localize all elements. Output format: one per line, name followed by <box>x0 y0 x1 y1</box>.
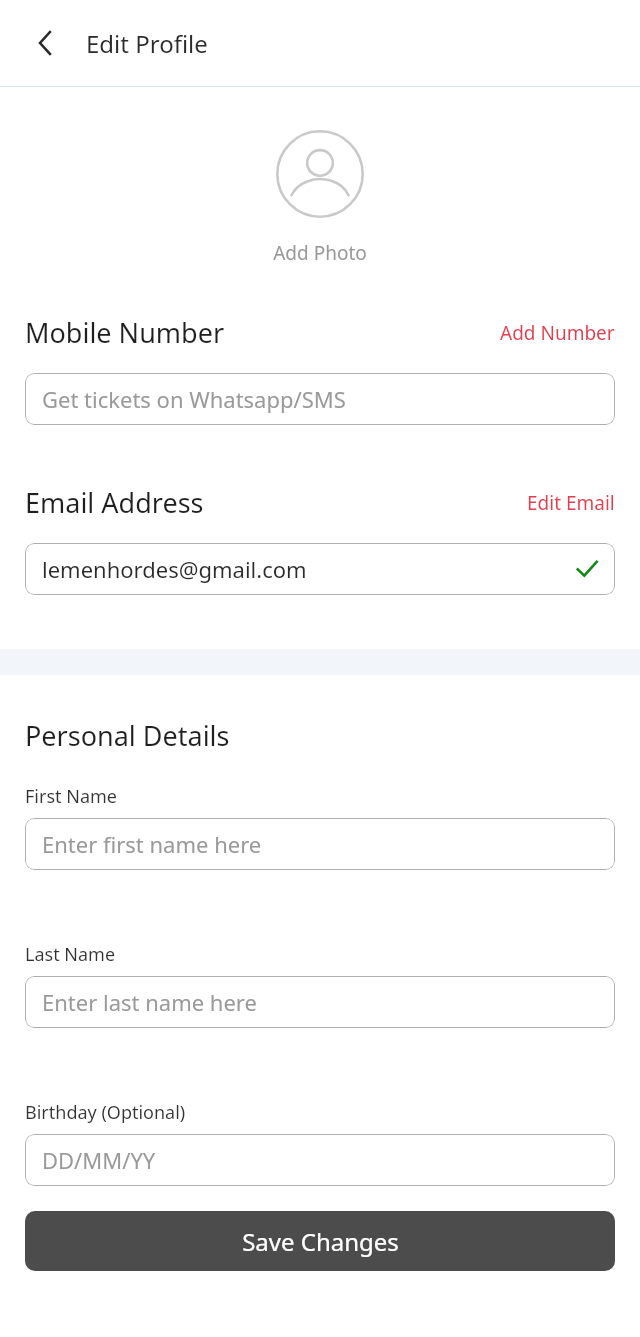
button[interactable]: Save Changes <box>25 1211 615 1271</box>
staticText: First Name <box>25 784 117 809</box>
staticText: Save Changes <box>242 1225 399 1258</box>
button[interactable]: lemenhordes@gmail.com <box>25 543 615 595</box>
button[interactable]: Add Number <box>500 320 615 346</box>
button[interactable]: Get tickets on Whatsapp/SMS <box>25 373 615 425</box>
staticText: Enter first name here <box>42 829 262 859</box>
staticText: Add Photo <box>273 240 367 266</box>
staticText: Add Number <box>500 320 615 346</box>
button[interactable]: Enter last name here <box>25 976 615 1028</box>
staticText: Edit Email <box>527 490 615 516</box>
button[interactable]: Back <box>22 20 68 66</box>
staticText: Enter last name here <box>42 987 257 1017</box>
button[interactable]: DD/MM/YY <box>25 1134 615 1186</box>
button[interactable]: Enter first name here <box>25 818 615 870</box>
button[interactable]: Edit Email <box>527 490 615 516</box>
button[interactable]: Add Photo <box>276 130 364 218</box>
staticText: lemenhordes@gmail.com <box>42 554 307 584</box>
staticText: DD/MM/YY <box>42 1145 156 1175</box>
staticText: Mobile Number <box>25 314 225 351</box>
staticText: Last Name <box>25 942 116 967</box>
staticText: Get tickets on Whatsapp/SMS <box>42 384 346 414</box>
staticText: Email Address <box>25 484 204 521</box>
staticText: Personal Details <box>25 717 230 754</box>
staticText: Birthday (Optional) <box>25 1100 186 1125</box>
staticText: Edit Profile <box>86 27 208 60</box>
